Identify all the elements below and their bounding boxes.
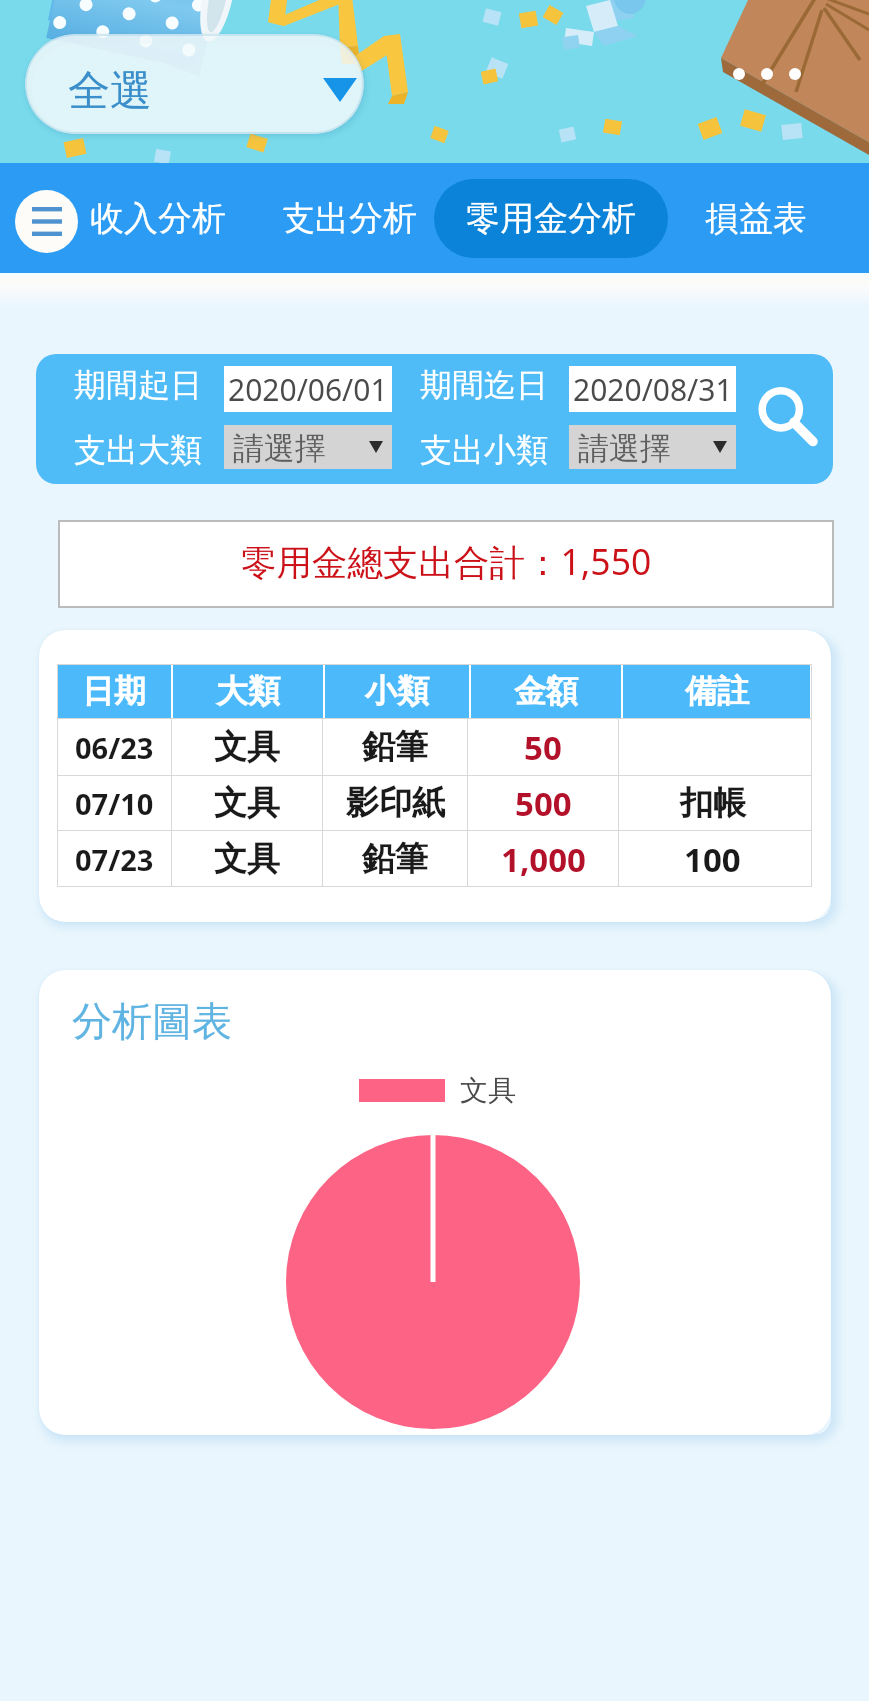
staticText: 鉛筆	[362, 838, 428, 880]
button[interactable]: 損益表	[705, 197, 807, 240]
button[interactable]: 收入分析	[90, 197, 226, 240]
staticText: 零用金總支出合計：1,550	[241, 537, 652, 585]
staticText: 文具	[214, 838, 280, 880]
staticText: 500	[515, 781, 572, 826]
staticText: 支出分析	[281, 197, 417, 240]
button[interactable]: 請選擇	[569, 425, 736, 469]
staticText: 影印紙	[346, 782, 445, 824]
staticText: 07/10	[75, 784, 154, 823]
staticText: 全選	[68, 65, 152, 118]
staticText: 零用金分析	[466, 197, 636, 240]
staticText: 期間迄日	[420, 365, 548, 405]
staticText: 07/23	[75, 840, 154, 879]
staticText: 損益表	[705, 197, 807, 240]
staticText: 文具	[214, 782, 280, 824]
staticText: 備註	[685, 671, 749, 711]
staticText: 支出小類	[420, 430, 548, 470]
staticText: 鉛筆	[362, 726, 428, 768]
staticText: 期間起日	[74, 365, 202, 405]
button[interactable]: 全選	[25, 34, 364, 134]
staticText: 文具	[460, 1073, 516, 1108]
staticText: 1,000	[501, 837, 586, 882]
staticText: 支出大類	[74, 430, 202, 470]
staticText: 分析圖表	[72, 996, 232, 1046]
staticText: 50	[524, 725, 562, 770]
button[interactable]: 零用金分析	[434, 179, 668, 258]
button[interactable]: 2020/06/01	[224, 366, 392, 412]
button[interactable]: 支出分析	[281, 197, 417, 240]
staticText: 文具	[214, 726, 280, 768]
staticText: 金額	[514, 671, 578, 711]
staticText: 請選擇	[233, 429, 326, 468]
button[interactable]: Menu	[15, 190, 78, 253]
staticText: 收入分析	[90, 197, 226, 240]
staticText: 06/23	[75, 728, 154, 767]
button[interactable]: 請選擇	[224, 425, 392, 469]
staticText: 大類	[216, 671, 280, 711]
button[interactable]: Search	[748, 379, 826, 457]
staticText: 2020/06/01	[228, 369, 388, 410]
button[interactable]: 2020/08/31	[569, 366, 736, 412]
staticText: 扣帳	[680, 782, 746, 824]
staticText: 2020/08/31	[573, 369, 733, 410]
staticText: 小類	[365, 671, 429, 711]
staticText: 日期	[82, 671, 146, 711]
staticText: 請選擇	[578, 429, 671, 468]
staticText: 100	[684, 837, 741, 882]
